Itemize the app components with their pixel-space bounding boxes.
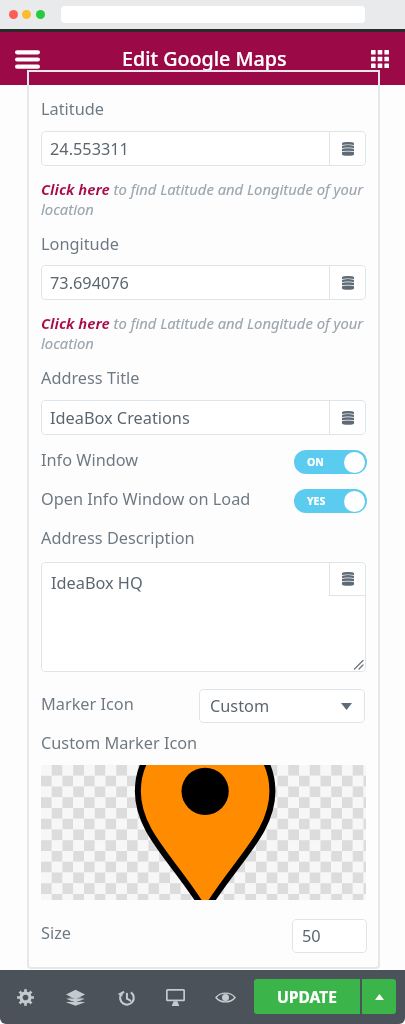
staticText: Marker Icon <box>41 693 134 715</box>
staticText: Longitude <box>41 233 119 255</box>
staticText: Edit Google Maps <box>122 45 287 72</box>
staticText: IdeaBox Creations <box>50 407 190 429</box>
button[interactable]: Navigator <box>50 970 100 1024</box>
button[interactable]: Settings <box>0 970 50 1024</box>
staticText: Size <box>41 922 72 944</box>
staticText: Open Info Window on Load <box>41 488 251 510</box>
button[interactable]: Apps <box>362 41 398 77</box>
staticText: ON <box>307 455 324 469</box>
button[interactable]: 50 <box>292 919 367 953</box>
button[interactable]: Custom <box>199 689 365 723</box>
button[interactable]: ON <box>294 450 367 474</box>
staticText: Custom Marker Icon <box>41 732 198 754</box>
staticText: Latitude <box>41 98 104 120</box>
staticText: 24.553311 <box>50 138 129 160</box>
button[interactable]: IdeaBox Creations <box>41 400 366 435</box>
button[interactable]: Preview Changes <box>200 970 250 1024</box>
button[interactable]: IdeaBox HQ <box>41 562 366 672</box>
button[interactable]: 73.694076 <box>41 265 366 300</box>
staticText: Address Description <box>41 527 195 549</box>
staticText: UPDATE <box>277 986 338 1007</box>
button[interactable]: Menu <box>8 40 46 78</box>
staticText: YES <box>307 494 326 508</box>
staticText: 50 <box>302 925 321 947</box>
button[interactable]: UPDATE <box>254 979 360 1014</box>
staticText: Address Title <box>41 367 140 389</box>
staticText: Click here to find Latitude and Longitud… <box>41 313 367 353</box>
staticText: Click here to find Latitude and Longitud… <box>41 179 367 219</box>
staticText: Info Window <box>41 449 139 471</box>
button[interactable]: 24.553311 <box>41 131 366 166</box>
button[interactable]: YES <box>294 489 367 513</box>
staticText: Custom <box>210 695 270 717</box>
button[interactable]: More save options <box>362 979 396 1014</box>
staticText: 73.694076 <box>50 272 129 294</box>
staticText: IdeaBox HQ <box>51 572 143 594</box>
button[interactable]: History <box>100 970 150 1024</box>
button[interactable]: Responsive Mode <box>150 970 200 1024</box>
